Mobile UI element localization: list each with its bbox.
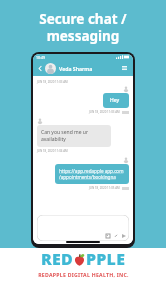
staticText: JUN 18, 2020 11:03 AM	[89, 110, 120, 114]
staticText: JUN 18, 2020 11:05 AM	[89, 186, 120, 190]
button[interactable]: Attach file	[113, 233, 118, 238]
staticText: Secure chat / messaging	[0, 10, 166, 45]
staticText: RED	[41, 248, 73, 270]
staticText: Veda Sharma	[59, 65, 93, 72]
staticText: JUN 18, 2020 11:04 AM	[37, 149, 68, 153]
button[interactable]: Attach photo	[37, 215, 129, 241]
staticText: REDAPPLE DIGITAL HEALTH, INC.	[38, 271, 129, 278]
staticText: Can you send me ur availability	[41, 129, 88, 143]
button[interactable]: Sender avatar	[123, 157, 129, 163]
button[interactable]: Hey	[103, 93, 129, 108]
button[interactable]: Sender avatar	[123, 86, 129, 92]
button[interactable]: Can you send me ur availability	[37, 125, 111, 147]
button[interactable]: Menu	[120, 64, 129, 73]
button[interactable]: Attach photo	[105, 233, 110, 238]
button[interactable]: Contact avatar	[37, 118, 43, 124]
button[interactable]: Send	[121, 233, 126, 238]
staticText: Hey	[110, 97, 120, 104]
staticText: PPLE	[86, 248, 126, 270]
staticText: https://app.redapple app.com /appointmen…	[59, 168, 124, 180]
button[interactable]: https://app.redapple app.com /appointmen…	[55, 164, 129, 184]
staticText: JUN 18, 2020 11:03 AM	[37, 80, 68, 84]
staticText: 10:49	[36, 55, 45, 60]
button[interactable]: Back	[35, 63, 45, 73]
